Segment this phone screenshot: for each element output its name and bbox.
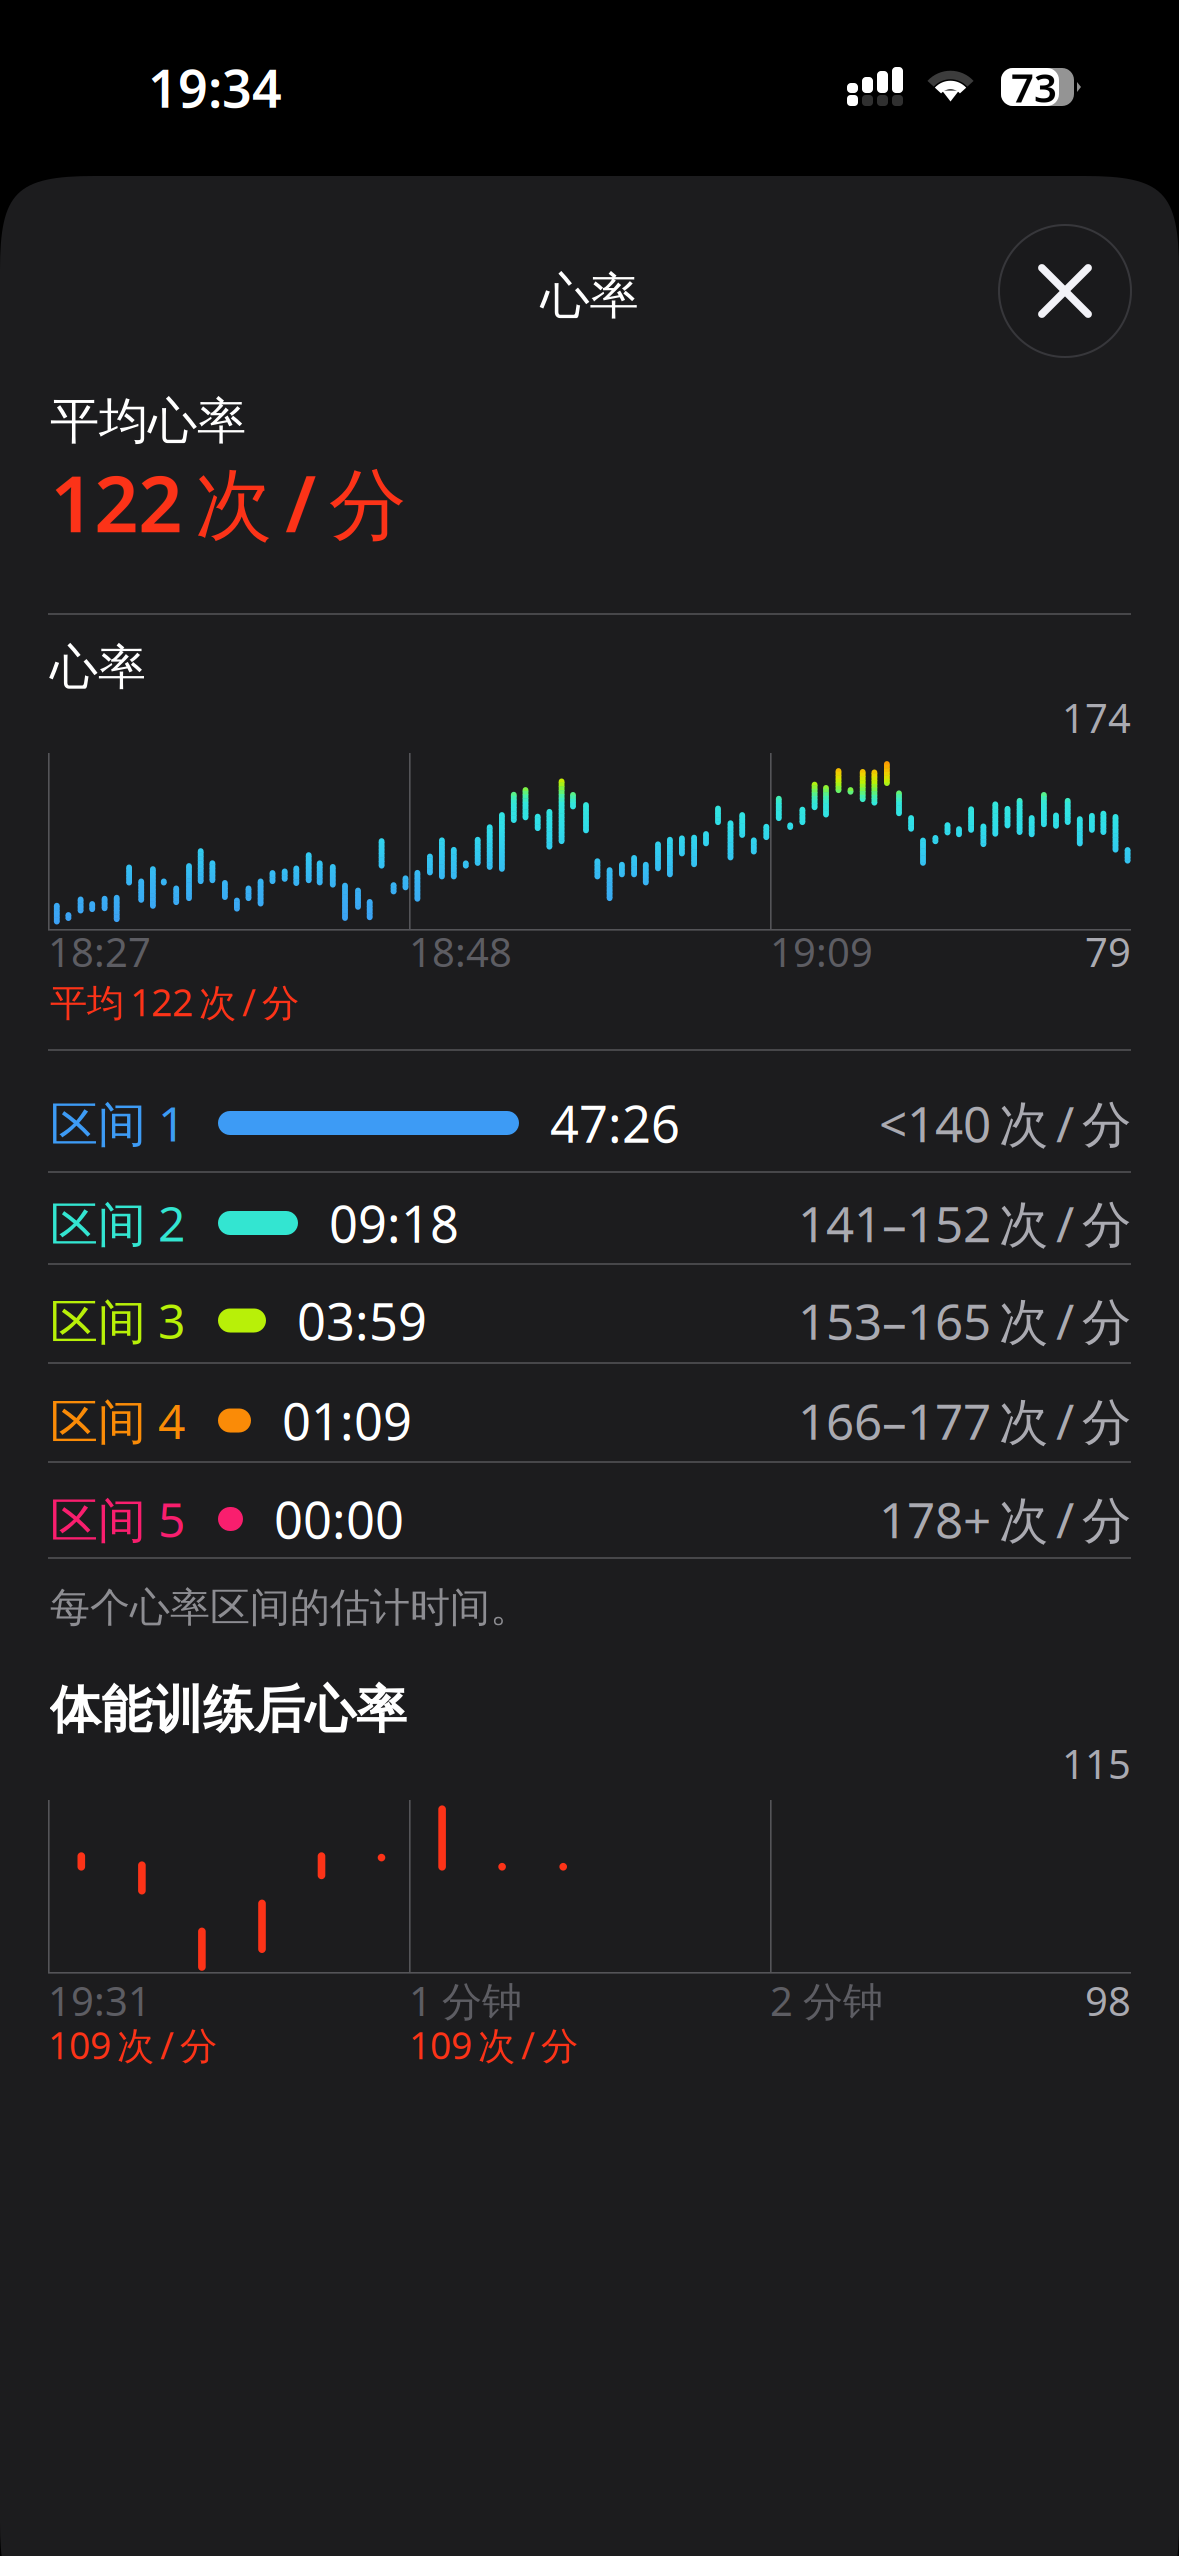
staticText: 平均 122 次 / 分 — [50, 977, 299, 1027]
staticText: 区间 2 — [50, 1191, 185, 1255]
staticText: 19:09 — [770, 925, 873, 978]
staticText: 心率 — [540, 266, 638, 327]
staticText: 174 — [1062, 691, 1131, 744]
staticText: 2 分钟 — [770, 1974, 883, 2027]
staticText: 体能训练后心率 — [50, 1679, 407, 1741]
staticText: 166–177 次 / 分 — [798, 1388, 1131, 1453]
staticText: 03:59 — [297, 1287, 427, 1354]
staticText: 01:09 — [282, 1387, 412, 1454]
button[interactable]: 区间 4 — [48, 1363, 1131, 1462]
staticText: 98 — [1085, 1974, 1131, 2027]
staticText: 18:27 — [48, 925, 151, 978]
staticText: 79 — [1085, 925, 1131, 978]
staticText: 122 次 / 分 — [50, 451, 406, 554]
staticText: 109 次 / 分 — [409, 2020, 578, 2070]
staticText: 每个心率区间的估计时间。 — [50, 1583, 530, 1632]
staticText: 区间 3 — [50, 1289, 185, 1352]
staticText: <140 次 / 分 — [879, 1090, 1131, 1156]
staticText: 18:48 — [409, 925, 512, 978]
staticText: 47:26 — [550, 1089, 680, 1157]
button[interactable]: 区间 3 — [48, 1264, 1131, 1363]
staticText: 141–152 次 / 分 — [798, 1190, 1131, 1256]
staticText: 19:34 — [148, 53, 282, 122]
button[interactable]: 区间 5 — [48, 1462, 1131, 1558]
staticText: 区间 1 — [50, 1091, 185, 1155]
button[interactable]: 关闭 — [999, 225, 1131, 357]
staticText: 115 — [1062, 1737, 1131, 1790]
staticText: 00:00 — [274, 1485, 404, 1553]
staticText: 153–165 次 / 分 — [798, 1288, 1131, 1353]
staticText: 1 分钟 — [409, 1974, 522, 2027]
staticText: 178+ 次 / 分 — [879, 1486, 1131, 1552]
staticText: 109 次 / 分 — [48, 2020, 217, 2070]
staticText: 19:31 — [48, 1974, 151, 2027]
staticText: 平均心率 — [50, 391, 246, 452]
staticText: 区间 4 — [50, 1389, 185, 1452]
staticText: 区间 5 — [50, 1487, 185, 1551]
staticText: 心率 — [50, 638, 146, 697]
staticText: 73 — [1011, 60, 1057, 113]
staticText: 09:18 — [329, 1189, 459, 1257]
button[interactable]: 区间 2 — [48, 1172, 1131, 1264]
button[interactable]: 区间 1 — [48, 1050, 1131, 1172]
